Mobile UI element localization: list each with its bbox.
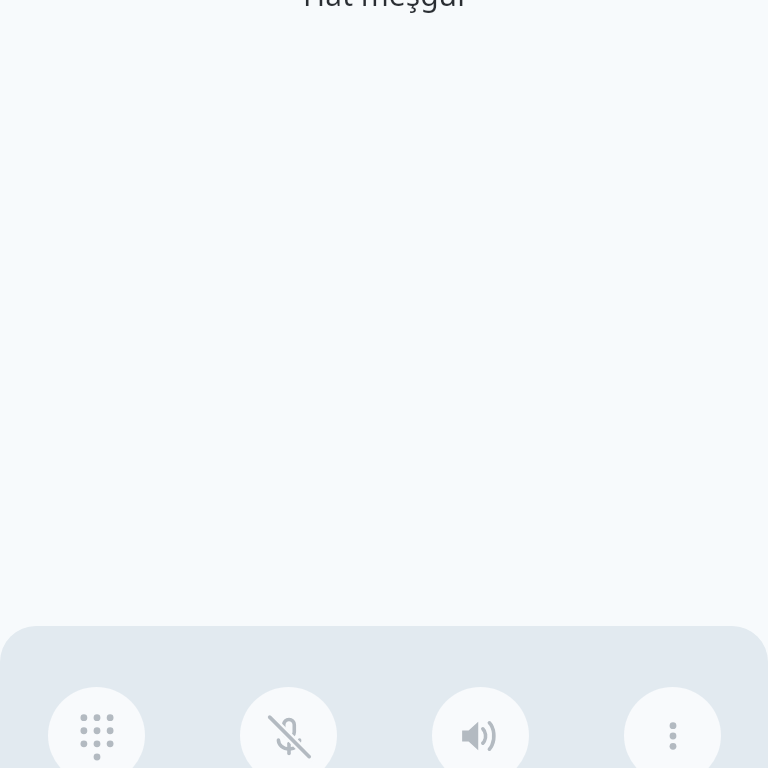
button[interactable]: Unmute microphone — [240, 687, 337, 768]
staticText: Hat meşgul — [0, 0, 768, 15]
button[interactable]: More options — [624, 687, 721, 768]
button[interactable]: Speaker — [432, 687, 529, 768]
button[interactable]: Dialpad — [48, 687, 145, 768]
